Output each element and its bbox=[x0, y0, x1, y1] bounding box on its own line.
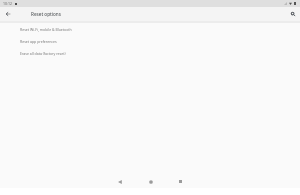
button[interactable]: Reset app preferences bbox=[0, 35, 300, 47]
staticText: 10:12 bbox=[3, 1, 12, 6]
button[interactable]: Search bbox=[287, 8, 299, 20]
button[interactable]: Back bbox=[113, 175, 126, 188]
staticText: Reset options bbox=[31, 11, 61, 17]
button[interactable]: Reset Wi-Fi, mobile & Bluetooth bbox=[0, 23, 300, 35]
button[interactable]: Recent apps bbox=[174, 175, 187, 188]
button[interactable]: Erase all data (factory reset) bbox=[0, 47, 300, 59]
button[interactable]: Home bbox=[144, 175, 157, 188]
button[interactable]: Navigate up bbox=[2, 8, 14, 20]
staticText: Erase all data (factory reset) bbox=[20, 51, 66, 56]
staticText: Reset Wi-Fi, mobile & Bluetooth bbox=[20, 27, 72, 32]
staticText: Reset app preferences bbox=[20, 39, 57, 44]
